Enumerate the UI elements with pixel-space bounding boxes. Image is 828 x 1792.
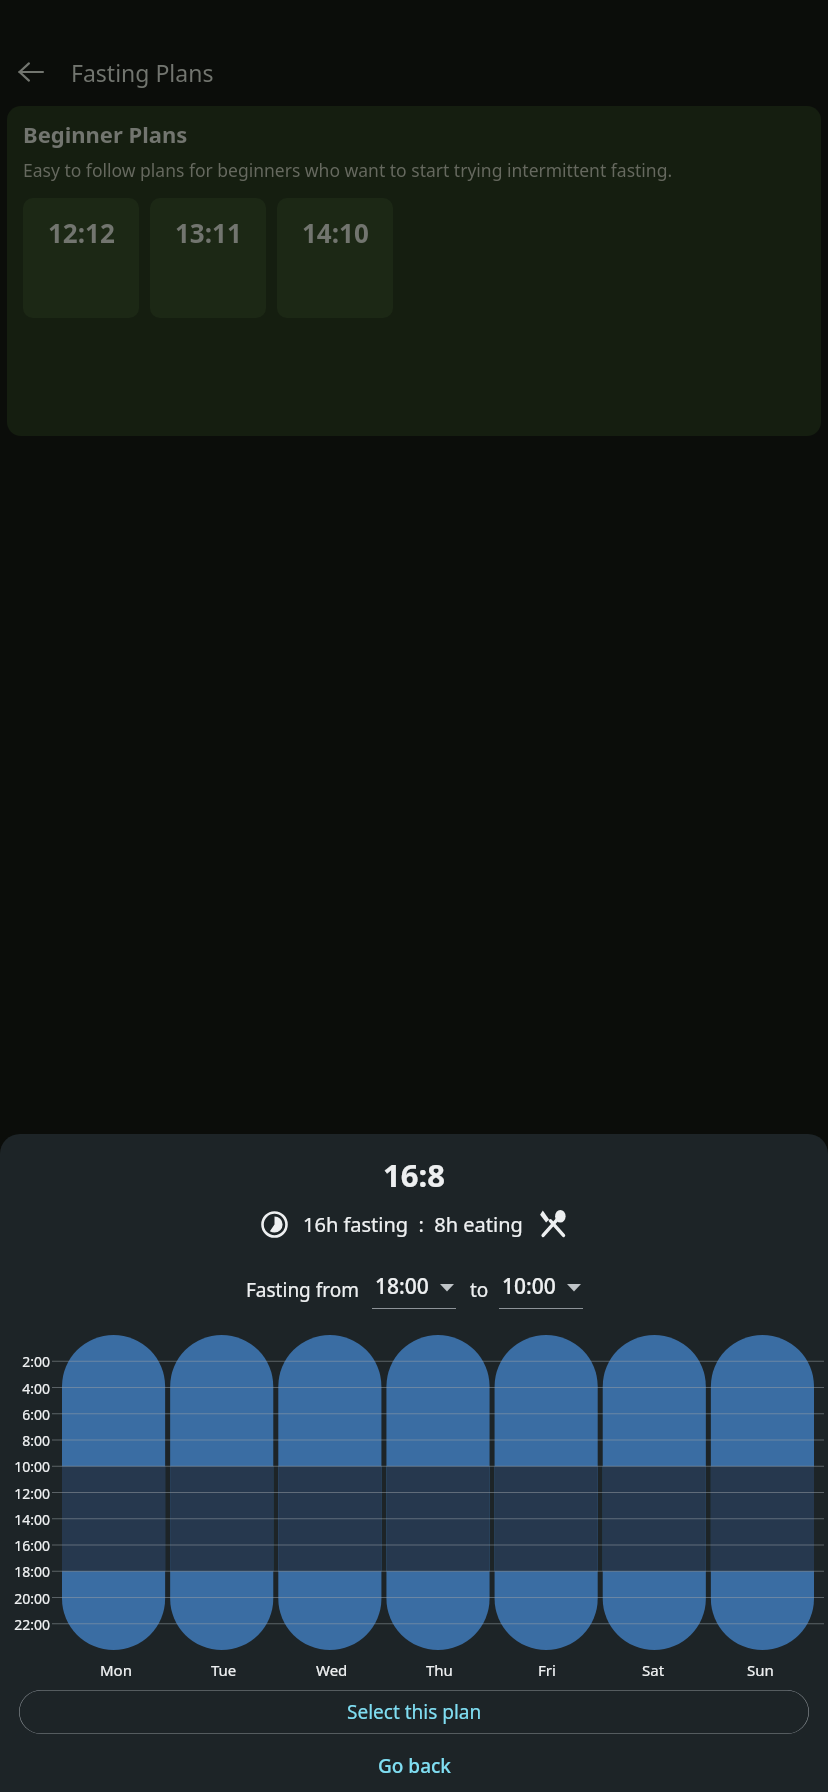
button[interactable]: 14:10 <box>277 198 393 318</box>
staticText: Wed <box>316 1660 348 1680</box>
staticText: Thu <box>426 1660 453 1680</box>
staticText: Fasting Plans <box>71 57 214 88</box>
button[interactable]: 13:11 <box>150 198 266 318</box>
staticText: 12:00 <box>4 1484 50 1503</box>
button[interactable]: 10:00 <box>499 1272 583 1309</box>
button[interactable]: 18:00 <box>372 1272 456 1309</box>
staticText: 20:00 <box>4 1589 50 1608</box>
button[interactable]: Go back <box>352 1744 477 1788</box>
staticText: 10:00 <box>502 1272 556 1301</box>
staticText: 18:00 <box>4 1562 50 1581</box>
staticText: 8:00 <box>4 1431 50 1450</box>
staticText: Fri <box>538 1660 556 1680</box>
button[interactable]: Select this plan <box>19 1690 809 1734</box>
staticText: to <box>470 1277 489 1303</box>
staticText: Select this plan <box>347 1699 482 1725</box>
staticText: 14:10 <box>302 215 369 250</box>
button[interactable]: Back <box>7 48 55 96</box>
staticText: 13:11 <box>175 215 242 250</box>
staticText: Go back <box>378 1753 451 1779</box>
button[interactable]: 12:12 <box>23 198 139 318</box>
staticText: 22:00 <box>4 1615 50 1634</box>
staticText: 16h fasting : 8h eating <box>303 1211 523 1238</box>
staticText: Sun <box>747 1660 774 1680</box>
staticText: 10:00 <box>4 1457 50 1476</box>
staticText: 16:00 <box>4 1536 50 1555</box>
staticText: Tue <box>211 1660 237 1680</box>
staticText: 4:00 <box>4 1379 50 1398</box>
staticText: Easy to follow plans for beginners who w… <box>23 158 673 182</box>
staticText: 14:00 <box>4 1510 50 1529</box>
staticText: Sat <box>642 1660 665 1680</box>
staticText: Beginner Plans <box>23 119 188 149</box>
staticText: 16:8 <box>383 1154 445 1196</box>
staticText: Fasting from <box>246 1277 360 1303</box>
staticText: 12:12 <box>48 215 115 250</box>
staticText: 18:00 <box>375 1272 429 1301</box>
staticText: Mon <box>100 1660 132 1680</box>
staticText: 6:00 <box>4 1405 50 1424</box>
staticText: 2:00 <box>4 1352 50 1371</box>
